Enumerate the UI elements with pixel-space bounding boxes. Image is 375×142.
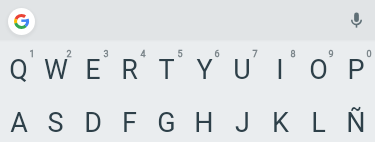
staticText: Y: [196, 54, 213, 86]
button[interactable]: P: [337, 42, 375, 95]
staticText: Ñ: [346, 107, 366, 139]
staticText: R: [121, 54, 138, 86]
button[interactable]: Ñ: [337, 95, 375, 142]
staticText: 8: [290, 49, 296, 59]
button[interactable]: O: [299, 42, 337, 95]
staticText: D: [84, 107, 102, 139]
staticText: O: [309, 54, 328, 86]
button[interactable]: G: [148, 95, 185, 142]
staticText: W: [44, 54, 68, 86]
staticText: U: [233, 54, 251, 86]
staticText: F: [122, 107, 137, 139]
staticText: 0: [366, 49, 372, 59]
staticText: 1: [29, 49, 35, 59]
button[interactable]: Q: [0, 42, 37, 95]
button[interactable]: R: [111, 42, 148, 95]
button[interactable]: E: [74, 42, 111, 95]
staticText: 6: [214, 49, 220, 59]
staticText: J: [235, 107, 250, 139]
staticText: 3: [103, 49, 109, 59]
button[interactable]: Google Search: [8, 8, 35, 35]
staticText: A: [10, 107, 28, 139]
staticText: 4: [140, 49, 146, 59]
button[interactable]: J: [223, 95, 261, 142]
button[interactable]: D: [74, 95, 111, 142]
button[interactable]: S: [37, 95, 74, 142]
button[interactable]: Voice input: [341, 5, 372, 36]
staticText: P: [347, 54, 365, 86]
staticText: T: [158, 54, 175, 86]
staticText: K: [272, 107, 289, 139]
staticText: E: [85, 54, 101, 86]
staticText: S: [47, 107, 64, 139]
staticText: L: [311, 107, 326, 139]
staticText: H: [194, 107, 214, 139]
button[interactable]: F: [111, 95, 148, 142]
button[interactable]: K: [261, 95, 299, 142]
button[interactable]: Y: [185, 42, 223, 95]
button[interactable]: I: [261, 42, 299, 95]
staticText: 5: [177, 49, 183, 59]
button[interactable]: W: [37, 42, 74, 95]
button[interactable]: L: [299, 95, 337, 142]
staticText: 2: [66, 49, 72, 59]
button[interactable]: T: [148, 42, 185, 95]
staticText: G: [157, 107, 176, 139]
button[interactable]: A: [0, 95, 37, 142]
button[interactable]: U: [223, 42, 261, 95]
staticText: Q: [9, 54, 28, 86]
staticText: I: [276, 54, 284, 86]
button[interactable]: H: [185, 95, 223, 142]
staticText: 7: [252, 49, 258, 59]
staticText: 9: [328, 49, 334, 59]
